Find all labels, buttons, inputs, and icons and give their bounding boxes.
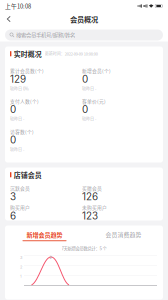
- staticText: 1: [20, 274, 22, 279]
- staticText: 0: [82, 103, 88, 115]
- button[interactable]: Back: [0, 12, 18, 26]
- staticText: 搜索会员手机号/昵称/姓名: [16, 31, 75, 39]
- button[interactable]: 搜索会员手机号/昵称/姓名: [0, 26, 168, 41]
- staticText: 123: [82, 210, 98, 222]
- staticText: 会员消费趋势: [105, 230, 141, 239]
- staticText: 0: [82, 73, 88, 85]
- staticText: 2: [49, 255, 51, 260]
- staticText: 新增会员(个): [82, 67, 111, 74]
- staticText: 126: [82, 191, 98, 202]
- staticText: 访客数(个): [10, 128, 34, 135]
- staticText: 0: [10, 134, 16, 146]
- button[interactable]: 新增会员趋势: [5, 225, 84, 244]
- staticText: 买赠会员: [82, 185, 102, 192]
- staticText: 实时概况: [14, 49, 42, 59]
- staticText: 较昨日 -: [10, 146, 24, 152]
- staticText: 更新时间：2022-09-09 10:08:00: [45, 51, 98, 57]
- staticText: 店铺会员: [14, 170, 42, 180]
- staticText: 3: [10, 191, 16, 202]
- staticText: 购买用户: [10, 204, 30, 211]
- staticText: 支付人数(个): [10, 98, 39, 105]
- staticText: 0: [10, 103, 16, 115]
- staticText: 较昨日 -: [10, 116, 24, 122]
- staticText: 会员概况: [70, 14, 98, 24]
- staticText: 较昨日 -: [82, 86, 96, 92]
- staticText: 累计会员数(个): [10, 67, 44, 74]
- staticText: 7天新增会员数总计：5 个: [61, 245, 106, 252]
- staticText: 129: [10, 73, 26, 85]
- staticText: 3: [20, 255, 22, 260]
- staticText: 新增会员趋势: [26, 230, 62, 239]
- staticText: 较昨日 0%: [10, 86, 29, 92]
- staticText: 较昨日 -: [82, 116, 96, 122]
- staticText: 沉默会员: [10, 185, 30, 192]
- staticText: 客单价(元): [82, 98, 106, 105]
- staticText: 2: [20, 264, 22, 269]
- staticText: 6: [10, 210, 16, 222]
- button[interactable]: 会员消费趋势: [84, 225, 163, 244]
- staticText: 未购买用户: [82, 204, 107, 211]
- staticText: 上午10:08: [5, 2, 31, 10]
